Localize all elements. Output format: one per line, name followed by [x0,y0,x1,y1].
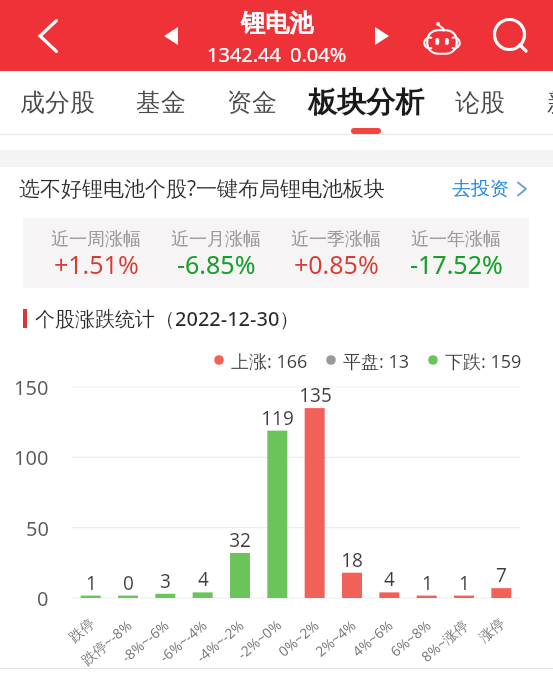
staticText: -2%~0% [233,615,285,663]
button[interactable]: 论股 [422,71,538,134]
staticText: -6%~-4% [155,615,211,666]
staticText: 4%~6% [348,615,397,661]
staticText: 下跌: 159 [445,349,522,371]
staticText: 个股涨跌统计（2022-12-30） [35,305,300,332]
staticText: 锂电池 [241,8,313,38]
button[interactable]: Search [482,7,538,63]
button[interactable]: 基金 [103,71,219,134]
staticText: 1 [86,570,97,596]
staticText: 跌停~-8% [77,615,136,669]
staticText: 资金 [227,87,277,118]
staticText: 近一年涨幅 [411,228,501,251]
button[interactable]: Next sector [358,12,406,60]
staticText: 1342.44 [207,41,281,68]
staticText: 基金 [136,87,186,118]
staticText: 近一季涨幅 [291,228,381,251]
staticText: 4 [198,566,209,592]
staticText: 板块分析 [308,84,424,121]
staticText: 6%~8% [386,615,435,661]
staticText: -8%~-6% [117,615,173,666]
button[interactable]: 板块分析 [288,71,444,134]
staticText: 135 [299,382,332,408]
staticText: 0.04% [290,41,347,68]
staticText: 0%~2% [274,615,323,661]
staticText: -6.85% [177,247,256,281]
staticText: +0.85% [294,247,379,281]
staticText: 成分股 [20,87,95,118]
button[interactable]: Back [18,0,78,71]
staticText: 跌停 [66,615,99,647]
button[interactable]: AI assistant [414,7,470,63]
staticText: 去投资 [452,177,509,201]
staticText: 119 [261,405,294,431]
staticText: -4%~-2% [192,615,248,666]
button[interactable]: Previous sector [147,12,195,60]
button[interactable]: 资金 [194,71,310,134]
staticText: 100 [14,444,49,471]
staticText: 150 [14,374,49,401]
staticText: 新闻 [547,87,553,118]
staticText: 0 [37,585,49,612]
staticText: 8%~涨停 [417,615,472,666]
staticText: 0 [123,570,134,596]
staticText: 50 [26,515,49,542]
staticText: +1.51% [54,247,139,281]
staticText: 4 [384,566,395,592]
staticText: 涨停 [476,615,509,647]
staticText: 选不好锂电池个股?一键布局锂电池板块 [19,174,386,203]
staticText: 近一月涨幅 [171,228,261,251]
button[interactable]: 选不好锂电池个股?一键布局锂电池板块 [0,167,553,210]
staticText: 7 [496,562,507,588]
staticText: 平盘: 13 [343,349,410,371]
staticText: 论股 [455,87,505,118]
staticText: 近一周涨幅 [51,228,141,251]
staticText: 上涨: 166 [231,349,308,371]
button[interactable]: 新闻 [514,71,553,134]
staticText: -17.52% [410,247,503,281]
staticText: 32 [229,527,251,553]
staticText: 1 [459,570,470,596]
staticText: 3 [160,568,171,594]
staticText: 2%~4% [311,615,360,661]
button[interactable]: 成分股 [0,71,115,134]
staticText: 1 [422,570,433,596]
staticText: 18 [341,547,363,573]
